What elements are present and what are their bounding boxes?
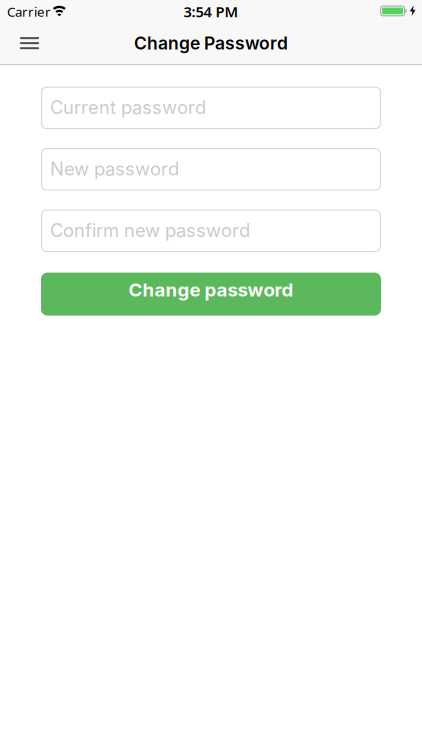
textField[interactable]: Confirm new password: [41, 216, 381, 246]
textField[interactable]: Current password: [41, 93, 381, 123]
staticText: 3:54 PM: [183, 2, 238, 21]
button[interactable]: Menu: [10, 28, 49, 58]
staticText: Current password: [41, 93, 232, 123]
staticText: Change password: [128, 278, 293, 301]
staticText: New password: [41, 154, 198, 184]
staticText: Change Password: [134, 33, 288, 54]
textField[interactable]: New password: [41, 154, 381, 184]
staticText: Carrier: [7, 3, 51, 20]
staticText: New password: [50, 158, 179, 180]
staticText: Current password: [50, 96, 206, 118]
button[interactable]: Change password: [41, 273, 381, 316]
staticText: Confirm new password: [50, 219, 250, 241]
staticText: Confirm new password: [41, 216, 287, 246]
